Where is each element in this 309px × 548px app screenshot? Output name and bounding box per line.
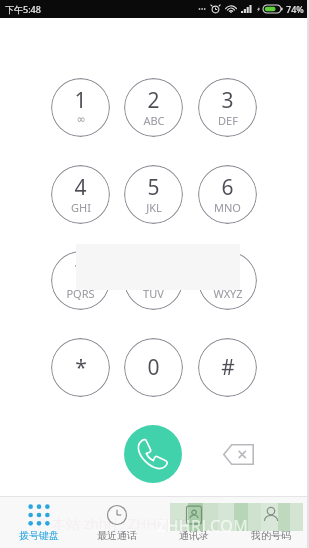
staticText: PQRS <box>66 286 95 301</box>
staticText: ∞ <box>76 113 86 126</box>
staticText: GHI <box>71 200 91 215</box>
staticText: 74% <box>286 3 304 15</box>
button[interactable]: 1 <box>51 78 110 137</box>
button[interactable]: 拨号键盘 <box>0 497 78 548</box>
staticText: 4 <box>74 173 87 202</box>
button[interactable]: 6 <box>198 165 257 224</box>
button[interactable]: Backspace <box>212 425 264 483</box>
staticText: 6 <box>221 173 234 202</box>
staticText: DEF <box>218 113 238 128</box>
button[interactable]: # <box>198 338 257 397</box>
staticText: 5 <box>147 173 160 202</box>
staticText: 我的号码 <box>251 529 291 542</box>
button[interactable]: * <box>51 338 110 397</box>
button[interactable]: 我的号码 <box>232 497 309 548</box>
button[interactable]: 8 <box>124 251 183 310</box>
staticText: 3 <box>221 86 234 115</box>
staticText: 1 <box>74 86 87 115</box>
staticText: ZHHRJ.COM <box>157 515 249 537</box>
button[interactable]: 0 <box>124 338 183 397</box>
button[interactable]: 2 <box>124 78 183 137</box>
button[interactable]: Call <box>124 425 182 483</box>
staticText: 通讯录 <box>179 529 209 542</box>
staticText: TUV <box>143 286 164 301</box>
staticText: 2 <box>147 86 160 115</box>
staticText: 7 <box>74 259 87 288</box>
staticText: 下午5:48 <box>5 3 41 15</box>
staticText: MNO <box>214 200 241 215</box>
staticText: WXYZ <box>213 286 243 301</box>
staticText: JKL <box>146 200 162 215</box>
staticText: 0 <box>147 353 160 382</box>
button[interactable]: 最近通话 <box>78 497 155 548</box>
button[interactable]: 3 <box>198 78 257 137</box>
staticText: ABC <box>143 113 165 128</box>
staticText: 最近通话 <box>97 529 137 542</box>
staticText: 拨号键盘 <box>19 529 59 542</box>
button[interactable]: 5 <box>124 165 183 224</box>
button[interactable]: 7 <box>51 251 110 310</box>
staticText: * <box>75 353 87 382</box>
button[interactable]: 9 <box>198 251 257 310</box>
staticText: # <box>221 353 235 382</box>
button[interactable]: 通讯录 <box>155 497 232 548</box>
button[interactable]: 4 <box>51 165 110 224</box>
staticText: 本站 zhhrj . ZHHRJ.COM <box>52 514 205 533</box>
